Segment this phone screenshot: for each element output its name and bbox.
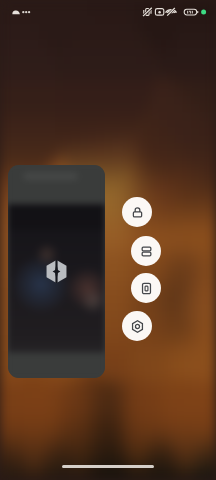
button[interactable]: Split screen: [131, 236, 161, 266]
button[interactable]: App info: [131, 273, 161, 303]
button[interactable]: Lock app: [122, 197, 152, 227]
button[interactable]: Settings: [122, 311, 152, 341]
button[interactable]: [8, 165, 105, 378]
